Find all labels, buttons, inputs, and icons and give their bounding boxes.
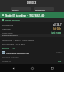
staticText: DEVICE (27, 1, 37, 5)
button[interactable]: Back (6, 64, 20, 72)
button[interactable]: Last sync (0, 30, 64, 34)
staticText: OK (58, 60, 62, 63)
button[interactable]: Home (25, 64, 39, 72)
staticText: REFRESH STATUS (35, 8, 53, 11)
button[interactable]: Node 01 is online · 192.168.1.40 (0, 12, 64, 18)
button[interactable]: REFRESH STATUS (34, 7, 54, 11)
staticText: Interface activity log (5, 51, 56, 54)
staticText: SCAN NETWORK (12, 8, 30, 11)
staticText: RX Packets : 412 882 (2, 42, 25, 45)
button[interactable]: Recent apps (45, 64, 59, 72)
staticText: v2.14.7 (53, 23, 62, 26)
staticText: DIAGNOSTICS (2, 34, 18, 37)
staticText: just now (51, 31, 62, 34)
staticText: OPEN (56, 51, 62, 54)
staticText: Interface : eth0 / 1000 Mbps (2, 38, 35, 41)
button[interactable]: Interface activity log (0, 50, 64, 55)
staticText: PORT STATUS (4, 19, 20, 22)
button[interactable]: SCAN NETWORK (11, 7, 31, 11)
staticText: Node 01 is online · 192.168.1.40 (4, 14, 62, 17)
staticText: Firmware (2, 23, 53, 26)
button[interactable]: Firmware (0, 22, 64, 26)
staticText: Errors : 0 (2, 46, 15, 49)
staticText: 6d 04h (53, 27, 62, 30)
staticText: Uptime (2, 27, 53, 30)
button[interactable]: Uptime (0, 26, 64, 30)
staticText: 12:04:11 (2, 60, 58, 63)
staticText: Last sync (2, 31, 51, 34)
staticText: Session started (2, 56, 19, 59)
